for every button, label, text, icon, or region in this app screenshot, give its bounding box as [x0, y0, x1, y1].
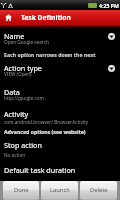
- button[interactable]: Open dropdown: [105, 30, 118, 43]
- button[interactable]: Default task duration: [0, 165, 120, 177]
- staticText: Open Google search: [4, 39, 49, 45]
- staticText: Task Definition: [21, 13, 71, 22]
- staticText: Delete: [90, 186, 108, 194]
- button[interactable]: Delete: [80, 181, 117, 200]
- staticText: VIEW (Open): [4, 71, 32, 77]
- staticText: Each option narrows down the next: [4, 51, 96, 58]
- staticText: Data: [4, 87, 20, 97]
- staticText: 4:25 PM: [99, 2, 119, 9]
- button[interactable]: Data: [0, 87, 120, 101]
- staticText: http://google.com: [4, 95, 44, 101]
- button[interactable]: Home: [2, 12, 14, 24]
- staticText: Activity: [4, 109, 29, 119]
- button[interactable]: Open dropdown: [105, 62, 118, 75]
- staticText: No action: [4, 152, 26, 158]
- staticText: Default task duration: [4, 165, 76, 175]
- staticText: Launch: [50, 186, 70, 194]
- staticText: Advanced options (see website): [4, 128, 86, 135]
- button[interactable]: Action type: [0, 63, 120, 77]
- staticText: Name: [4, 31, 25, 41]
- button[interactable]: Stop action: [0, 140, 120, 158]
- staticText: Done: [14, 186, 29, 194]
- button[interactable]: Name: [0, 31, 120, 45]
- staticText: com.android.browser/.BrowserActivity: [4, 119, 89, 125]
- button[interactable]: Done: [3, 181, 39, 200]
- staticText: Stop action: [4, 140, 42, 150]
- staticText: Action type: [4, 63, 42, 73]
- button[interactable]: Activity: [0, 109, 120, 125]
- button[interactable]: Launch: [41, 181, 78, 200]
